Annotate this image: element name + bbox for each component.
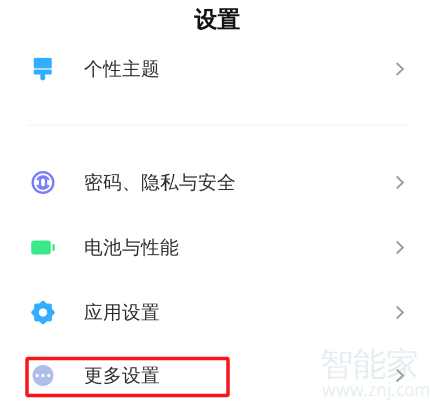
button[interactable]: 应用设置 — [0, 280, 430, 345]
button[interactable]: 更多设置 — [0, 345, 430, 406]
staticText: 应用设置 — [84, 301, 160, 324]
button[interactable]: 密码、隐私与安全 — [0, 150, 430, 215]
staticText: 电池与性能 — [84, 236, 179, 259]
staticText: 更多设置 — [84, 364, 160, 387]
staticText: www.znj.com — [322, 378, 430, 401]
staticText: 设置 — [194, 6, 240, 34]
staticText: 密码、隐私与安全 — [84, 171, 236, 194]
button[interactable]: 电池与性能 — [0, 215, 430, 280]
staticText: 个性主题 — [84, 57, 160, 80]
staticText: 智能家 — [320, 344, 419, 385]
button[interactable]: 个性主题 — [0, 38, 430, 100]
